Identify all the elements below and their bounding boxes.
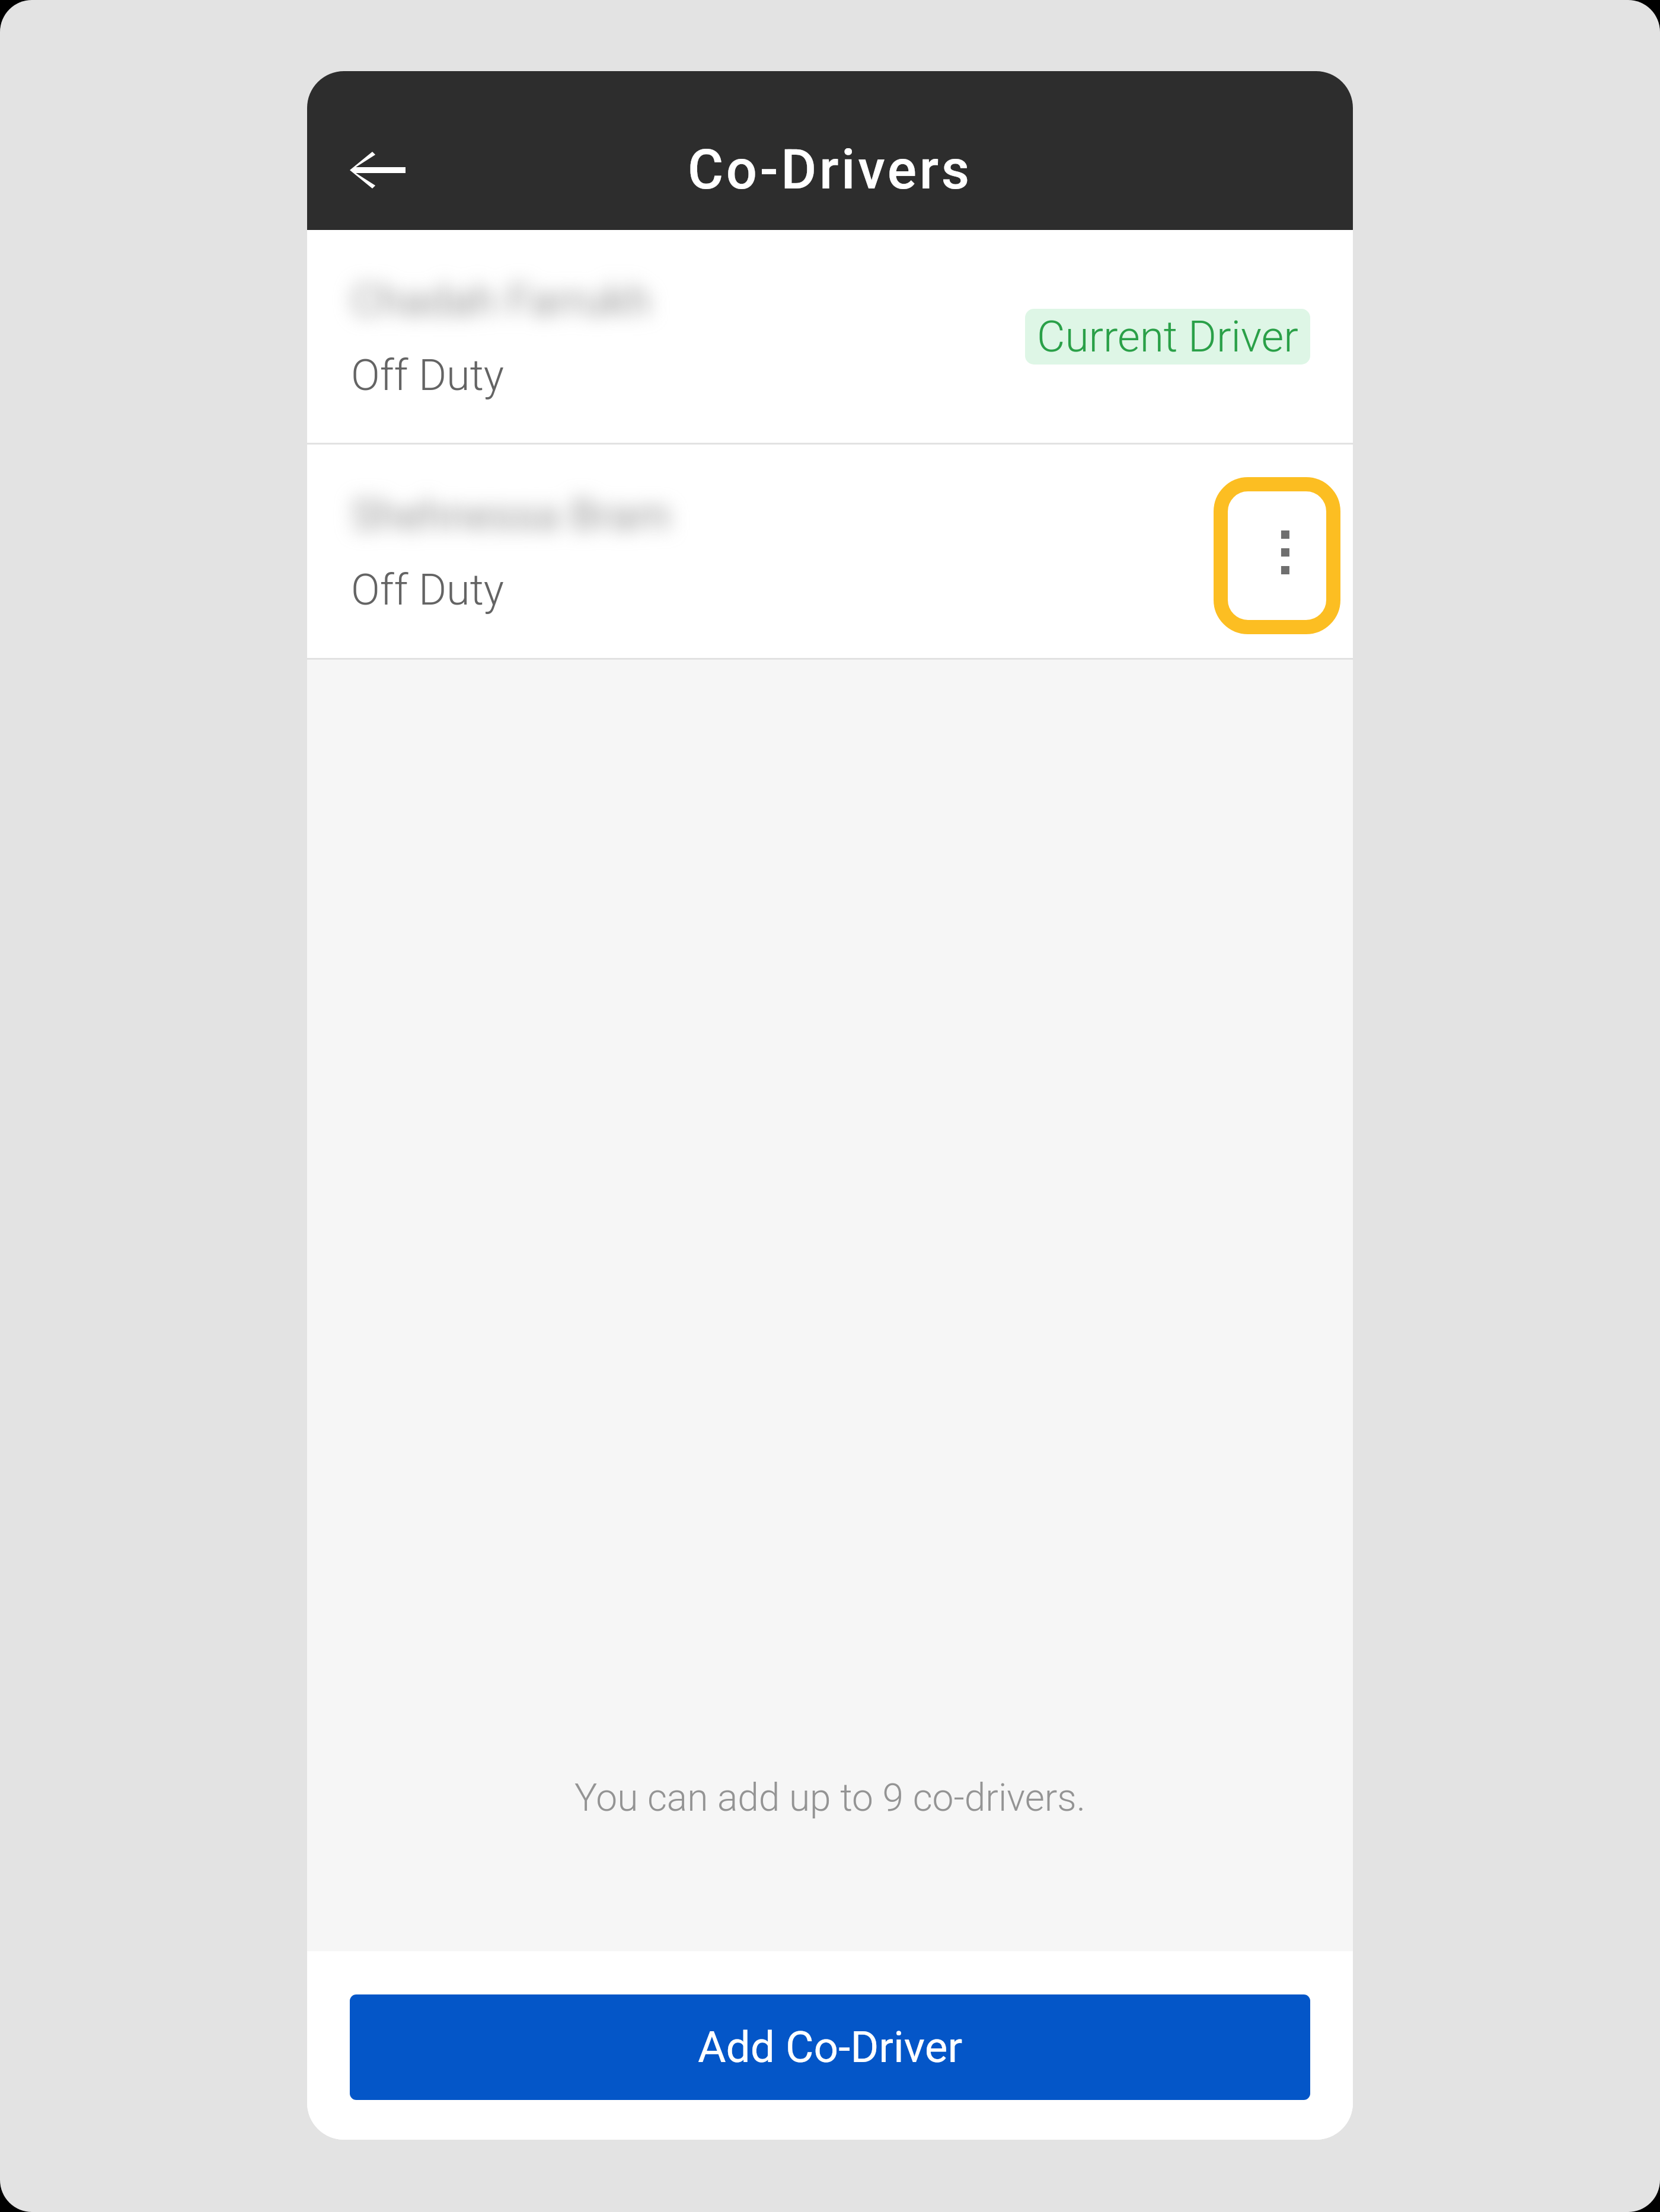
staticText: Off Duty	[351, 565, 505, 615]
staticText: Chadah Farrukh	[351, 276, 651, 325]
staticText: Current Driver	[1037, 311, 1298, 362]
staticText: Add Co-Driver	[698, 2022, 963, 2073]
button[interactable]: Chadah Farrukh	[307, 230, 1353, 443]
staticText: Off Duty	[351, 350, 505, 400]
button[interactable]: Add Co-Driver	[350, 1994, 1310, 2100]
staticText: Shehnessa Bram	[351, 490, 671, 540]
staticText: Co-Drivers	[688, 138, 972, 202]
staticText: You can add up to 9 co-drivers.	[574, 1776, 1086, 1820]
button[interactable]: More options	[1214, 477, 1340, 634]
button[interactable]: Current Driver	[1025, 309, 1310, 365]
button[interactable]: Shehnessa Bram	[307, 445, 1353, 658]
button[interactable]: Back	[321, 126, 422, 215]
